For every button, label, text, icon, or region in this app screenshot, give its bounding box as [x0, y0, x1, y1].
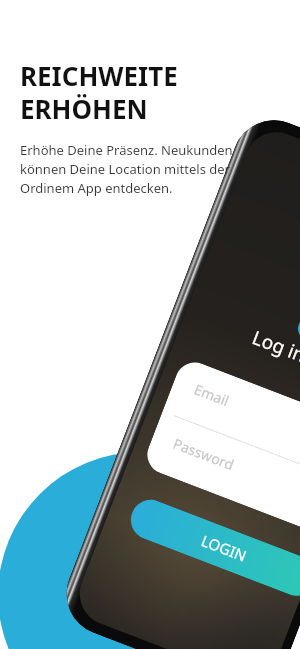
staticText: REICHWEITE ERHÖHEN [20, 58, 178, 127]
staticText: Email [191, 379, 232, 410]
button[interactable]: LOGIN [125, 494, 300, 599]
staticText: LOGIN [199, 530, 250, 566]
staticText: Log into [249, 324, 300, 375]
staticText: Password [171, 434, 237, 474]
staticText: Erhöhe Deine Präsenz. Neukunden können D… [20, 141, 233, 197]
